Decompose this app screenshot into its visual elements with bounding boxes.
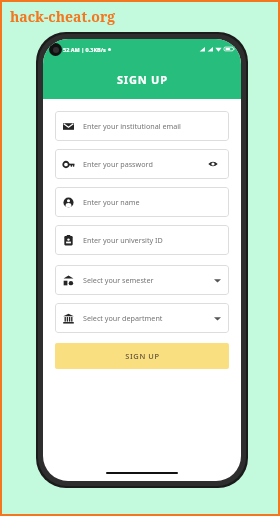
staticText: SIGN UP (125, 351, 160, 361)
staticText: 52 AM | 0.3KB/s (63, 46, 106, 53)
button[interactable]: SIGN UP (55, 343, 229, 369)
button[interactable]: Enter your university ID (55, 225, 229, 255)
staticText: Select your semester (83, 275, 214, 285)
staticText: hack-cheat.org (10, 7, 116, 26)
button[interactable]: Enter your name (55, 187, 229, 217)
button[interactable]: Enter your password (55, 149, 229, 179)
button[interactable]: Select your department (55, 303, 229, 333)
staticText: SIGN UP (117, 72, 168, 87)
staticText: Enter your name (83, 197, 221, 207)
button[interactable]: Enter your institutional email (55, 111, 229, 141)
staticText: Select your department (83, 313, 214, 323)
staticText: Enter your institutional email (83, 121, 221, 131)
staticText: Enter your password (83, 159, 205, 169)
button[interactable]: Show password (205, 156, 221, 172)
staticText: Enter your university ID (83, 235, 221, 245)
button[interactable]: Select your semester (55, 265, 229, 295)
